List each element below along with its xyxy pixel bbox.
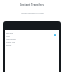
button[interactable]: Lee	[6, 35, 59, 38]
staticText: Lee	[6, 35, 10, 38]
staticText: Marianne	[6, 38, 16, 41]
button[interactable]: Priya	[6, 44, 59, 47]
button[interactable]: Add recipient	[54, 34, 56, 36]
button[interactable]: Theo Wu	[6, 41, 59, 44]
button[interactable]: Marianne	[6, 38, 59, 41]
staticText: Instant Transfers	[20, 3, 44, 7]
staticText: Theo Wu	[6, 41, 16, 44]
staticText: Priya	[6, 44, 12, 47]
staticText: Send money in a tap	[21, 11, 44, 14]
staticText: Recent	[6, 32, 14, 35]
